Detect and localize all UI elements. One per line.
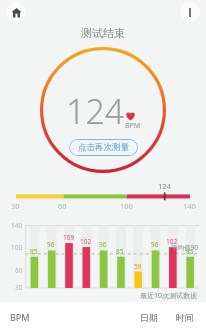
staticText: 测试结束 — [0, 26, 206, 40]
staticText: BPM — [125, 121, 141, 131]
staticText: 100 — [120, 201, 133, 211]
staticText: BPM — [10, 311, 30, 323]
staticText: 30 — [11, 201, 20, 211]
button[interactable]: BPM — [0, 302, 40, 332]
staticText: 最近10次测试数据 — [140, 291, 198, 301]
staticText: 124 — [158, 181, 171, 191]
staticText: 60 — [58, 201, 67, 211]
staticText: 140 — [11, 221, 23, 230]
staticText: 96 — [47, 240, 55, 249]
staticText: 96 — [151, 240, 159, 249]
staticText: 平均值90 — [171, 243, 198, 252]
staticText: 100 — [11, 243, 23, 252]
staticText: 102 — [80, 237, 92, 246]
staticText: 85 — [30, 247, 38, 256]
staticText: 85 — [116, 247, 124, 256]
staticText: 124 — [66, 88, 125, 134]
staticText: 140 — [183, 201, 196, 211]
staticText: 85 — [186, 247, 194, 256]
button[interactable]: 日期 — [131, 302, 167, 332]
staticText: 109 — [63, 233, 75, 242]
staticText: 96 — [99, 240, 107, 249]
staticText: 102 — [166, 237, 178, 246]
staticText: 59 — [134, 262, 142, 271]
staticText: 日期 — [140, 312, 158, 323]
staticText: 60 — [15, 266, 23, 275]
button[interactable]: More options — [180, 2, 200, 22]
staticText: 点击再次测量 — [78, 142, 129, 153]
button[interactable]: 点击再次测量 — [69, 139, 138, 156]
staticText: 时间 — [176, 312, 194, 323]
button[interactable]: Home — [6, 2, 26, 22]
staticText: 30 — [15, 283, 23, 292]
button[interactable]: 时间 — [167, 302, 206, 332]
